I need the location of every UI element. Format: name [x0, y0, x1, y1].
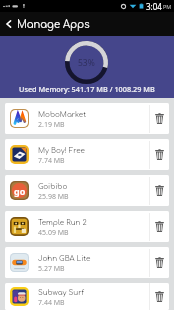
button[interactable]: Delete	[150, 283, 169, 310]
other: Back	[4, 19, 14, 29]
staticText: 5.27 MB	[38, 264, 65, 274]
staticText: 25.98 MB	[38, 192, 69, 202]
staticText: 45.09 MB	[38, 228, 69, 238]
staticText: My Boy! Free	[38, 147, 85, 155]
button[interactable]: MoboMarket	[5, 103, 169, 134]
staticText: MoboMarket	[38, 111, 87, 119]
button[interactable]: Delete	[150, 139, 169, 170]
button[interactable]: go	[5, 175, 169, 206]
button[interactable]: My Boy! Free	[5, 139, 169, 170]
staticText: 7.44 MB	[38, 298, 65, 308]
staticText: 7.74 MB	[38, 156, 65, 166]
staticText: Subway Surf	[38, 289, 85, 297]
button[interactable]: Delete	[150, 103, 169, 134]
button[interactable]: Delete	[150, 247, 169, 278]
staticText: 2.19 MB	[38, 120, 65, 130]
button[interactable]: Temple Run 2	[5, 211, 169, 242]
staticText: 53%	[78, 57, 95, 69]
staticText: go	[14, 185, 26, 197]
staticText: Manage Apps	[17, 19, 90, 30]
staticText: John GBA Lite	[38, 255, 91, 263]
staticText: Goibibo	[38, 183, 68, 191]
button[interactable]: John GBA Lite	[5, 247, 169, 278]
button[interactable]: Subway Surf	[5, 283, 169, 310]
staticText: 3:04	[146, 1, 162, 12]
staticText: Temple Run 2	[38, 219, 87, 227]
button[interactable]: Delete	[150, 211, 169, 242]
staticText: PM	[163, 3, 172, 10]
staticText: Used Memory: 541.17 MB / 1008.29 MB	[19, 84, 155, 94]
button[interactable]: Delete	[150, 175, 169, 206]
button[interactable]: Back	[0, 12, 174, 36]
